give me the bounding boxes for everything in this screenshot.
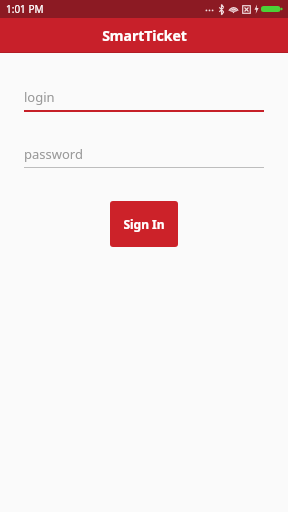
staticText: login bbox=[24, 88, 55, 106]
staticText: password bbox=[24, 145, 83, 163]
button[interactable]: login bbox=[24, 88, 264, 112]
button[interactable]: Sign In bbox=[110, 201, 178, 247]
staticText: 1:01 PM bbox=[6, 2, 44, 16]
staticText: Sign In bbox=[123, 216, 165, 232]
button[interactable]: password bbox=[24, 145, 264, 168]
staticText: SmartTicket bbox=[102, 26, 187, 45]
